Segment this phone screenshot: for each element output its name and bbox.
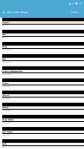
button[interactable]: MCC — [0, 139, 84, 149]
staticText: 260 — [2, 146, 5, 148]
staticText: 14:42 — [78, 3, 82, 4]
staticText: Nazwa użytkownika — [2, 70, 22, 72]
button[interactable]: Nazwa użytkownika — [0, 66, 84, 78]
staticText: Internet — [2, 25, 7, 26]
staticText: 83% — [71, 3, 74, 4]
staticText: Nieustawione — [2, 122, 11, 124]
button[interactable]: MMSC — [0, 103, 84, 114]
button[interactable]: Nazwa — [0, 18, 84, 29]
button[interactable]: Port MMS — [0, 127, 84, 139]
staticText: Serwer — [2, 94, 9, 97]
button[interactable]: Serwer — [0, 91, 84, 102]
staticText: Proxy — [2, 46, 7, 48]
staticText: Proxy MMS — [2, 118, 13, 121]
staticText: Nieustawione — [2, 49, 11, 51]
staticText: Edytuj punkt dostępu — [7, 11, 27, 14]
button[interactable]: Proxy MMS — [0, 115, 84, 127]
staticText: Hasło — [2, 82, 8, 84]
staticText: Nieustawione — [2, 85, 11, 87]
staticText: WIĘCEJ — [71, 11, 78, 13]
staticText: Nieustawione — [2, 134, 11, 136]
staticText: Port — [2, 58, 6, 60]
staticText: MCC — [2, 143, 6, 145]
button[interactable]: WIĘCEJ — [69, 7, 79, 18]
staticText: APN — [2, 33, 6, 36]
staticText: Nieustawione — [2, 97, 11, 99]
staticText: Nieustawione — [2, 73, 11, 75]
staticText: Nieustawione — [2, 61, 11, 63]
button[interactable]: Port — [0, 54, 84, 66]
staticText: Nazwa — [2, 21, 9, 24]
staticText: Nieustawione — [2, 110, 11, 111]
button[interactable]: Back — [1, 7, 7, 18]
button[interactable]: Hasło — [0, 78, 84, 90]
staticText: internet — [2, 37, 7, 39]
button[interactable]: APN — [0, 30, 84, 42]
staticText: MMSC — [2, 106, 8, 109]
staticText: Port MMS — [2, 131, 12, 133]
button[interactable]: Proxy — [0, 42, 84, 54]
